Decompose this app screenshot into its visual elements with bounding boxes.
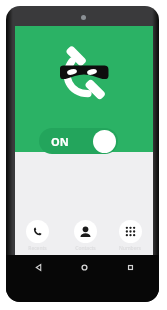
button[interactable]: Dialpad	[112, 220, 148, 252]
button[interactable]: Recent apps	[107, 255, 153, 279]
staticText: Recents	[28, 245, 47, 252]
staticText: Contacts	[75, 245, 96, 252]
button[interactable]: Back	[15, 255, 61, 279]
button[interactable]: Recents	[19, 220, 55, 252]
staticText: ON	[51, 134, 69, 149]
button[interactable]: Contacts	[67, 220, 103, 252]
button[interactable]: ON	[39, 128, 118, 154]
staticText: Numbers	[119, 245, 141, 252]
button[interactable]: Home	[61, 255, 107, 279]
